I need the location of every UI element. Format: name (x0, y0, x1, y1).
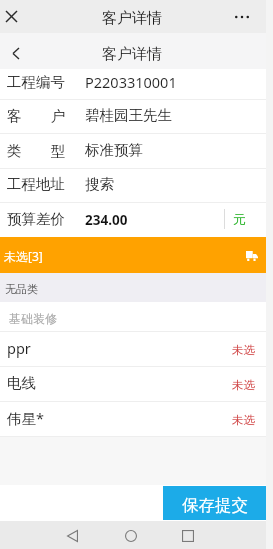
staticText: 未选 (232, 343, 255, 357)
staticText: 伟星* (7, 408, 44, 428)
staticText: 保存提交 (182, 495, 248, 516)
staticText: 客户详情 (102, 9, 162, 28)
staticText: 234.00 (85, 211, 128, 229)
button[interactable] (0, 99, 266, 134)
button[interactable] (0, 203, 266, 238)
staticText: P2203310001 (85, 72, 177, 92)
staticText: 搜索 (85, 175, 114, 193)
button[interactable]: Back (52, 522, 92, 549)
button[interactable]: Back (8, 45, 24, 61)
button[interactable]: More options (232, 7, 252, 27)
staticText: 未选[3] (4, 248, 43, 264)
button[interactable] (0, 237, 266, 273)
other: Delivery (246, 251, 258, 261)
button[interactable]: Close (0, 4, 23, 28)
staticText: 未选 (232, 378, 255, 392)
button[interactable] (0, 367, 266, 402)
staticText: 客户详情 (102, 45, 162, 64)
button[interactable] (0, 168, 266, 203)
button[interactable] (0, 134, 266, 169)
staticText: 类 型 (7, 140, 65, 160)
staticText: ppr (7, 338, 31, 358)
button[interactable]: 保存提交 (163, 486, 266, 520)
staticText: 元 (233, 211, 246, 227)
staticText: 碧桂园王先生 (85, 106, 172, 124)
staticText: 工程地址 (7, 175, 65, 193)
button[interactable] (0, 69, 266, 99)
staticText: 客 户 (7, 105, 65, 125)
button[interactable]: Recent apps (168, 522, 208, 549)
staticText: 电线 (7, 374, 36, 392)
staticText: 未选 (232, 413, 255, 427)
button[interactable] (0, 402, 266, 437)
staticText: 工程编号 (7, 73, 65, 91)
staticText: 标准预算 (85, 141, 143, 159)
staticText: 预算差价 (7, 210, 65, 228)
staticText: 基础装修 (9, 311, 57, 326)
button[interactable] (0, 332, 266, 367)
button[interactable]: Home (111, 522, 151, 549)
staticText: 无品类 (5, 282, 38, 296)
